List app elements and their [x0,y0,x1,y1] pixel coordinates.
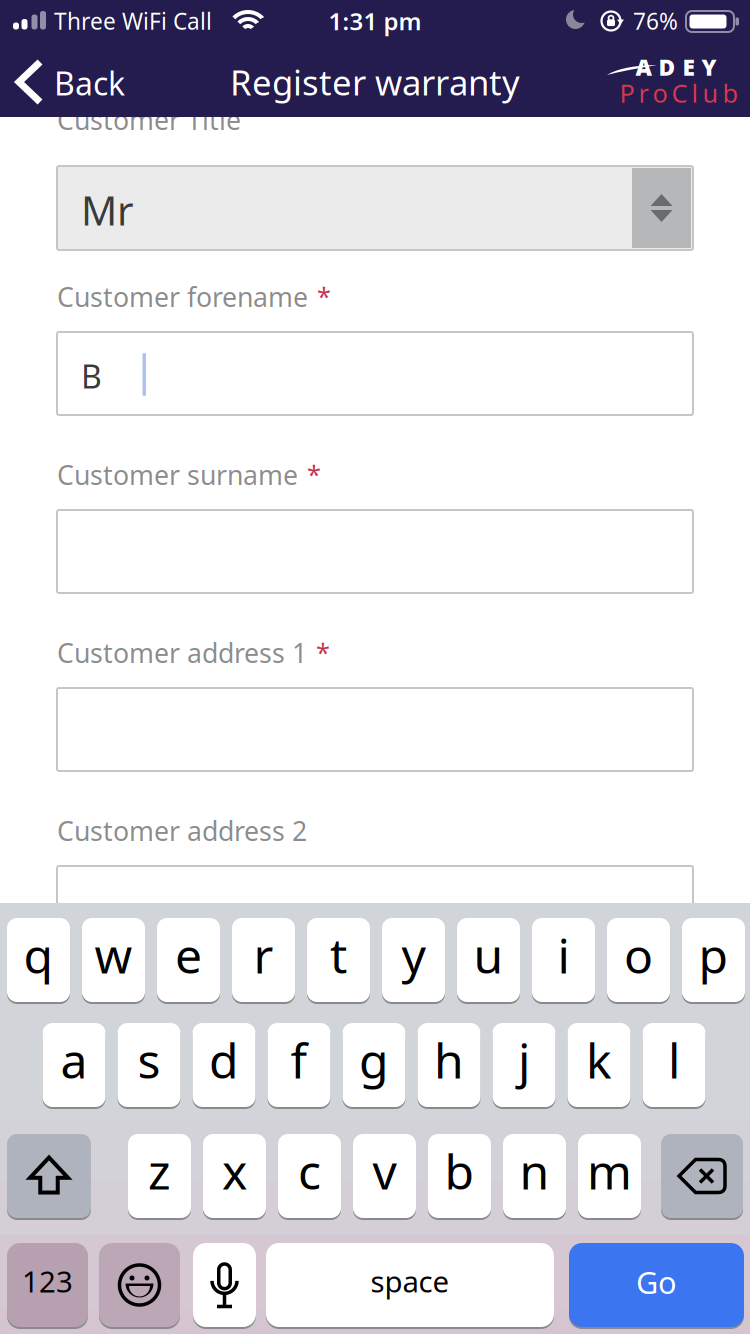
staticText: l [668,1028,680,1092]
button[interactable]: Dictate [193,1243,256,1329]
button[interactable]: a [42,1023,105,1109]
button[interactable]: space [266,1243,554,1329]
button[interactable]: u [457,918,520,1004]
button[interactable]: s [117,1023,180,1109]
button[interactable]: Customer title, Mr [57,166,693,250]
button[interactable]: c [278,1134,341,1220]
staticText: v [372,1139,396,1203]
button[interactable]: g [342,1023,405,1109]
staticText: d [209,1028,239,1092]
button[interactable]: n [503,1134,566,1220]
staticText: f [290,1028,307,1092]
staticText: h [434,1028,464,1092]
staticText: x [222,1139,247,1203]
staticText: Customer address 2 [57,813,307,848]
button[interactable]: e [157,918,220,1004]
staticText: Customer surname [57,457,298,492]
staticText: u [473,923,503,987]
staticText: b [444,1139,474,1203]
staticText: q [23,923,53,987]
button[interactable]: Emoji [99,1243,180,1329]
button[interactable]: Customer forename text field [57,332,693,415]
button[interactable]: t [307,918,370,1004]
staticText: i [557,923,569,987]
button[interactable]: w [82,918,145,1004]
staticText: Customer address 1 [57,635,307,670]
button[interactable]: Customer title picker [632,168,691,248]
button[interactable]: h [417,1023,480,1109]
staticText: 123 [22,1261,73,1300]
button[interactable]: m [578,1134,641,1220]
staticText: ProClub [619,76,738,110]
staticText: Mr [81,183,134,236]
button[interactable]: l [642,1023,705,1109]
button[interactable]: v [353,1134,416,1220]
staticText: 76% [633,6,678,36]
button[interactable]: 123 [7,1243,88,1329]
staticText: j [518,1028,530,1092]
staticText: a [60,1028,87,1092]
button[interactable]: Customer address 2 text field [57,866,693,949]
button[interactable]: Go [569,1243,744,1329]
staticText: o [624,923,653,987]
staticText: n [519,1139,549,1203]
staticText: c [298,1139,321,1203]
staticText: Register warranty [230,59,520,105]
button[interactable]: x [203,1134,266,1220]
staticText: y [401,923,425,987]
staticText: Customer forename [57,279,308,314]
staticText: w [94,923,132,987]
staticText: 1:31 pm [328,5,421,37]
staticText: Back [54,62,125,104]
button[interactable]: f [267,1023,330,1109]
button[interactable]: k [567,1023,630,1109]
button[interactable]: b [428,1134,491,1220]
staticText: Customer Title [57,102,241,137]
staticText: k [586,1028,612,1092]
button[interactable]: Back [0,0,150,117]
staticText: B [81,355,102,397]
staticText: s [137,1028,160,1092]
staticText: * [317,279,331,313]
staticText: m [587,1139,632,1203]
button[interactable]: r [232,918,295,1004]
button[interactable]: z [128,1134,191,1220]
button[interactable]: Shift [7,1134,91,1220]
staticText: Go [636,1262,677,1302]
staticText: z [148,1139,171,1203]
button[interactable]: Customer surname text field [57,510,693,593]
staticText: r [253,923,273,987]
button[interactable]: j [492,1023,555,1109]
button[interactable]: Customer address 1 text field [57,688,693,771]
staticText: Three WiFi Call [54,6,212,36]
staticText: p [698,923,728,987]
button[interactable]: i [532,918,595,1004]
staticText: ADEY [635,52,716,82]
staticText: space [370,1261,449,1300]
button[interactable]: q [7,918,70,1004]
staticText: g [359,1028,389,1092]
staticText: * [316,635,330,669]
button[interactable]: o [607,918,670,1004]
button[interactable]: p [682,918,745,1004]
staticText: * [307,457,321,491]
staticText: e [175,923,202,987]
button[interactable]: Delete [661,1134,743,1220]
button[interactable]: y [382,918,445,1004]
staticText: t [330,923,347,987]
button[interactable]: d [192,1023,255,1109]
